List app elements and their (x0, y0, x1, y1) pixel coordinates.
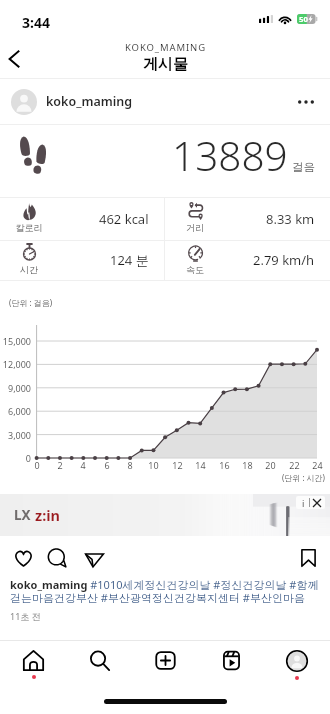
staticText: 462 kcal (99, 210, 149, 228)
button[interactable]: Search (76, 650, 122, 690)
staticText: 10 (148, 459, 159, 471)
staticText: 칼로리 (9, 222, 49, 233)
staticText: 18 (242, 459, 253, 471)
staticText: 13889 (172, 128, 288, 183)
button[interactable]: Create (142, 650, 188, 690)
button[interactable]: Share (77, 542, 111, 576)
button[interactable]: Ad info (298, 496, 309, 509)
staticText: 16 (219, 459, 230, 471)
staticText: koko_maming (46, 93, 133, 110)
staticText: 50 (299, 14, 308, 24)
button[interactable]: Save (291, 541, 325, 575)
staticText: (단위 : 걸음) (9, 297, 53, 308)
staticText: 8.33 km (266, 210, 315, 228)
button[interactable]: More options (293, 89, 319, 115)
staticText: 걸음 (292, 160, 315, 174)
staticText: 6 (104, 459, 110, 471)
staticText: 6,000 (7, 405, 31, 417)
staticText: 2 (57, 459, 63, 471)
button[interactable]: Like (6, 541, 40, 575)
staticText: 속도 (175, 264, 215, 275)
staticText: 15,000 (2, 335, 31, 347)
button[interactable]: koko_maming (0, 79, 330, 124)
staticText: 12 (172, 459, 183, 471)
button[interactable]: Profile (274, 650, 320, 690)
staticText: 22 (289, 459, 300, 471)
staticText: 8 (127, 459, 133, 471)
staticText: (단위 : 시간) (0, 472, 325, 483)
button[interactable]: Back (0, 40, 27, 77)
staticText: 거리 (175, 222, 215, 233)
staticText: KOKO_MAMING (125, 41, 206, 54)
button[interactable]: LX (0, 494, 330, 536)
staticText: 11초 전 (10, 610, 41, 622)
staticText: 3,000 (7, 429, 31, 441)
staticText: 2.79 km/h (253, 251, 315, 269)
staticText: 24 (312, 459, 323, 471)
staticText: 14 (195, 459, 206, 471)
button[interactable]: Comment (40, 541, 74, 575)
staticText: 게시물 (143, 55, 188, 74)
staticText: 3:44 (22, 13, 50, 32)
staticText: LX (14, 506, 31, 524)
staticText: 12,000 (2, 358, 31, 370)
staticText: i (302, 497, 305, 509)
staticText: 124 분 (110, 251, 149, 269)
staticText: z:in (35, 505, 60, 525)
staticText: 9,000 (7, 382, 31, 394)
button[interactable]: Reels (208, 650, 254, 690)
staticText: 0 (25, 452, 31, 464)
button[interactable]: Close ad (310, 496, 323, 509)
staticText: koko_maming #1010세계정신건강의날 #정신건강의날 #함께걷는마… (10, 577, 322, 605)
staticText: 20 (265, 459, 276, 471)
staticText: 시간 (9, 264, 49, 275)
staticText: 0 (34, 459, 40, 471)
button[interactable]: Home (10, 650, 56, 690)
staticText: 4 (80, 459, 86, 471)
